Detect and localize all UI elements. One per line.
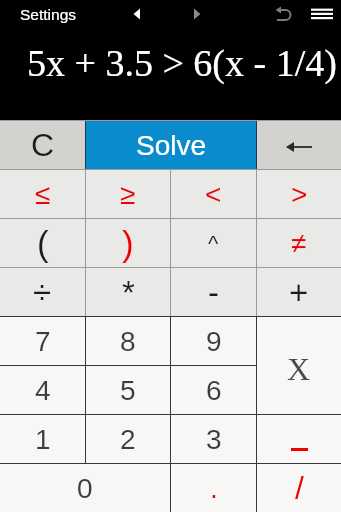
button[interactable]: ^ [171, 219, 256, 267]
staticText: Settings [20, 6, 77, 23]
button[interactable]: Settings [10, 0, 90, 28]
staticText: 2 [120, 424, 136, 455]
staticText: ≤ [35, 179, 51, 210]
button[interactable]: 8 [86, 317, 170, 365]
button[interactable]: Solve [86, 121, 256, 169]
button[interactable] [271, 2, 295, 26]
staticText: . [210, 473, 218, 504]
button[interactable]: - [171, 268, 256, 316]
button[interactable]: * [86, 268, 170, 316]
button[interactable]: > [257, 170, 341, 218]
staticText: < [205, 179, 222, 210]
staticText: ≠ [291, 228, 307, 259]
staticText: 5 [120, 375, 136, 406]
button[interactable]: 6 [171, 366, 256, 414]
staticText: > [291, 179, 308, 210]
staticText: 8 [120, 326, 136, 357]
staticText: 0 [77, 473, 93, 504]
button[interactable]: . [171, 464, 256, 512]
staticText: 1 [35, 424, 51, 455]
staticText: ) [122, 224, 134, 263]
button[interactable]: X [257, 317, 341, 414]
button[interactable]: ) [86, 219, 170, 267]
staticText: * [122, 274, 135, 311]
button[interactable]: + [257, 268, 341, 316]
button[interactable] [123, 2, 147, 26]
button[interactable]: ≠ [257, 219, 341, 267]
button[interactable]: ( [0, 219, 85, 267]
button[interactable]: ÷ [0, 268, 85, 316]
button[interactable] [306, 2, 338, 26]
button[interactable] [183, 2, 207, 26]
staticText: ≥ [120, 179, 136, 210]
staticText: - [208, 274, 219, 311]
staticText: ^ [208, 231, 219, 256]
staticText: 7 [35, 326, 51, 357]
button[interactable]: 7 [0, 317, 85, 365]
button[interactable]: 9 [171, 317, 256, 365]
button[interactable] [257, 121, 341, 169]
staticText: ( [37, 224, 49, 263]
button[interactable] [257, 415, 341, 463]
button[interactable]: < [171, 170, 256, 218]
staticText: + [289, 274, 309, 311]
staticText: 9 [206, 326, 222, 357]
staticText: 6 [206, 375, 222, 406]
staticText: 3 [206, 424, 222, 455]
staticText: 5x + 3.5 > 6(x - 1/4) [27, 42, 337, 84]
button[interactable]: C [0, 121, 85, 169]
button[interactable]: 4 [0, 366, 85, 414]
button[interactable]: 3 [171, 415, 256, 463]
button[interactable]: ≤ [0, 170, 85, 218]
button[interactable]: 0 [0, 464, 170, 512]
staticText: ÷ [33, 274, 52, 311]
button[interactable]: 5 [86, 366, 170, 414]
button[interactable]: ≥ [86, 170, 170, 218]
staticText: X [287, 351, 311, 386]
staticText: Solve [136, 130, 207, 161]
button[interactable]: 2 [86, 415, 170, 463]
staticText: / [295, 470, 304, 506]
staticText: 4 [35, 375, 51, 406]
button[interactable]: / [257, 464, 341, 512]
button[interactable]: 1 [0, 415, 85, 463]
staticText: C [31, 127, 55, 163]
